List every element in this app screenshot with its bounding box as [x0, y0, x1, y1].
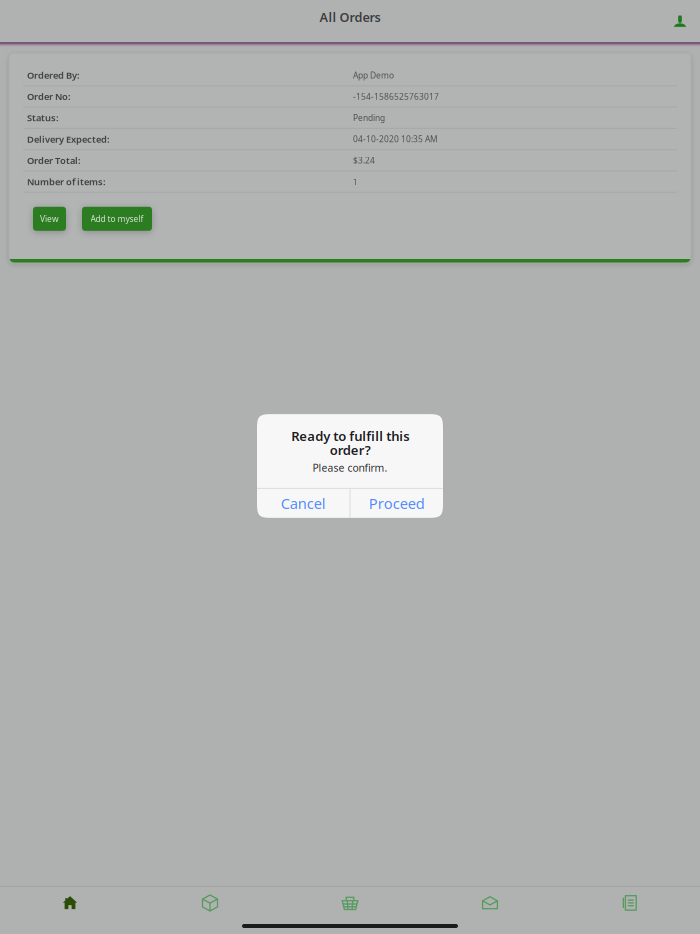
staticText: $3.24 [353, 155, 375, 166]
staticText: View [40, 213, 59, 224]
button[interactable]: Account [661, 0, 700, 42]
staticText: Pending [353, 112, 385, 123]
staticText: Number of items: [27, 175, 106, 188]
staticText: App Demo [353, 69, 394, 81]
staticText: Status: [27, 111, 59, 124]
button[interactable]: View [33, 207, 66, 231]
button[interactable]: Products [140, 887, 280, 918]
button[interactable]: Basket [280, 887, 420, 918]
staticText: Add to myself [90, 213, 143, 224]
button[interactable]: Orders [560, 887, 700, 918]
button[interactable]: Cancel [257, 489, 349, 518]
button[interactable]: Messages [420, 887, 560, 918]
button[interactable]: Add to myself [82, 207, 152, 231]
staticText: Proceed [369, 493, 425, 513]
staticText: Delivery Expected: [27, 133, 110, 145]
staticText: Please confirm. [312, 461, 387, 475]
staticText: Order No: [27, 90, 71, 103]
staticText: Ready to fulfill this order? [291, 427, 409, 459]
staticText: Ordered By: [27, 69, 80, 81]
staticText: 1 [353, 176, 358, 187]
button[interactable]: Home [0, 887, 140, 918]
staticText: Order Total: [27, 154, 81, 167]
staticText: Cancel [281, 493, 326, 513]
button[interactable]: Proceed [350, 489, 443, 518]
staticText: All Orders [319, 8, 380, 26]
staticText: -154-1586525763017 [353, 91, 439, 102]
staticText: 04-10-2020 10:35 AM [353, 133, 438, 145]
